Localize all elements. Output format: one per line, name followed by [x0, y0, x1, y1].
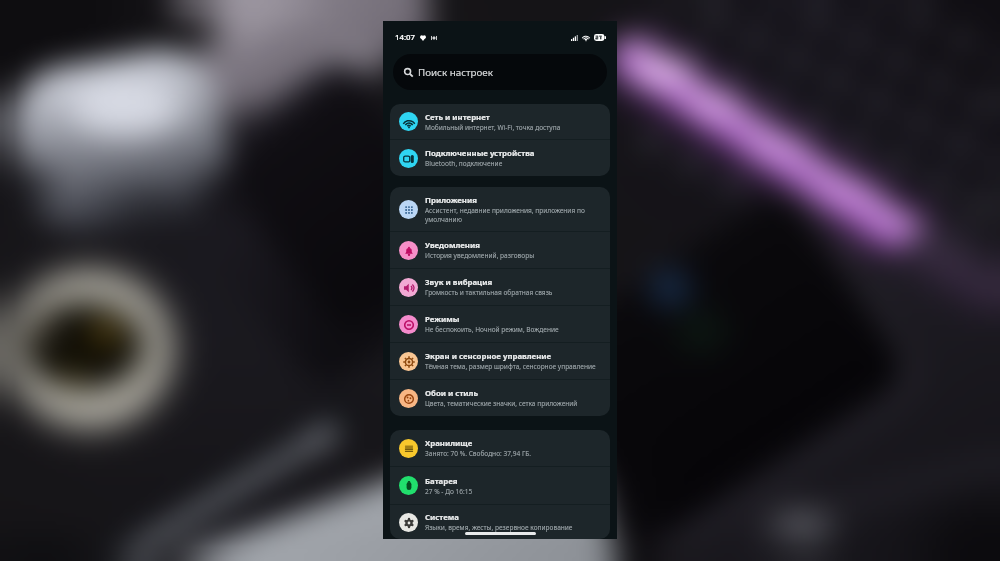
button[interactable]: Режимы [390, 306, 610, 342]
staticText: Языки, время, жесты, резервное копирован… [425, 523, 573, 532]
staticText: Цвета, тематические значки, сетка прилож… [425, 399, 578, 408]
button[interactable]: Сеть и интернет [390, 104, 610, 139]
staticText: Хранилище [425, 438, 473, 449]
staticText: Звук и вибрация [425, 277, 493, 288]
button[interactable]: Обои и стиль [390, 380, 610, 416]
staticText: История уведомлений, разговоры [425, 251, 535, 260]
staticText: Батарея [425, 476, 458, 487]
staticText: Уведомления [425, 240, 480, 251]
staticText: Сеть и интернет [425, 112, 490, 123]
staticText: Поиск настроек [418, 66, 493, 79]
staticText: Тёмная тема, размер шрифта, сенсорное уп… [425, 362, 596, 371]
staticText: Режимы [425, 314, 460, 325]
staticText: Система [425, 512, 459, 523]
button[interactable]: Поиск настроек [393, 54, 607, 90]
staticText: Мобильный интернет, Wi-Fi, точка доступа [425, 123, 561, 132]
staticText: Подключенные устройства [425, 148, 535, 159]
staticText: 27 % - До 16:15 [425, 487, 473, 496]
button[interactable]: Подключенные устройства [390, 140, 610, 176]
button[interactable]: Экран и сенсорное управление [390, 343, 610, 379]
staticText: Экран и сенсорное управление [425, 351, 552, 362]
staticText: Bluetooth, подключение [425, 159, 503, 168]
button[interactable]: Батарея [390, 467, 610, 504]
staticText: Ассистент, недавние приложения, приложен… [425, 206, 602, 224]
staticText: Занято: 70 %. Свободно: 37,94 ГБ. [425, 449, 532, 458]
staticText: Приложения [425, 195, 477, 206]
staticText: 14:07 [395, 32, 415, 43]
button[interactable]: Приложения [390, 187, 610, 231]
button[interactable]: Звук и вибрация [390, 269, 610, 305]
staticText: Громкость и тактильная обратная связь [425, 288, 553, 297]
button[interactable]: Хранилище [390, 430, 610, 466]
staticText: Не беспокоить, Ночной режим, Вождение [425, 325, 559, 334]
staticText: Обои и стиль [425, 388, 479, 399]
button[interactable]: Уведомления [390, 232, 610, 268]
button[interactable]: Система [390, 505, 610, 539]
